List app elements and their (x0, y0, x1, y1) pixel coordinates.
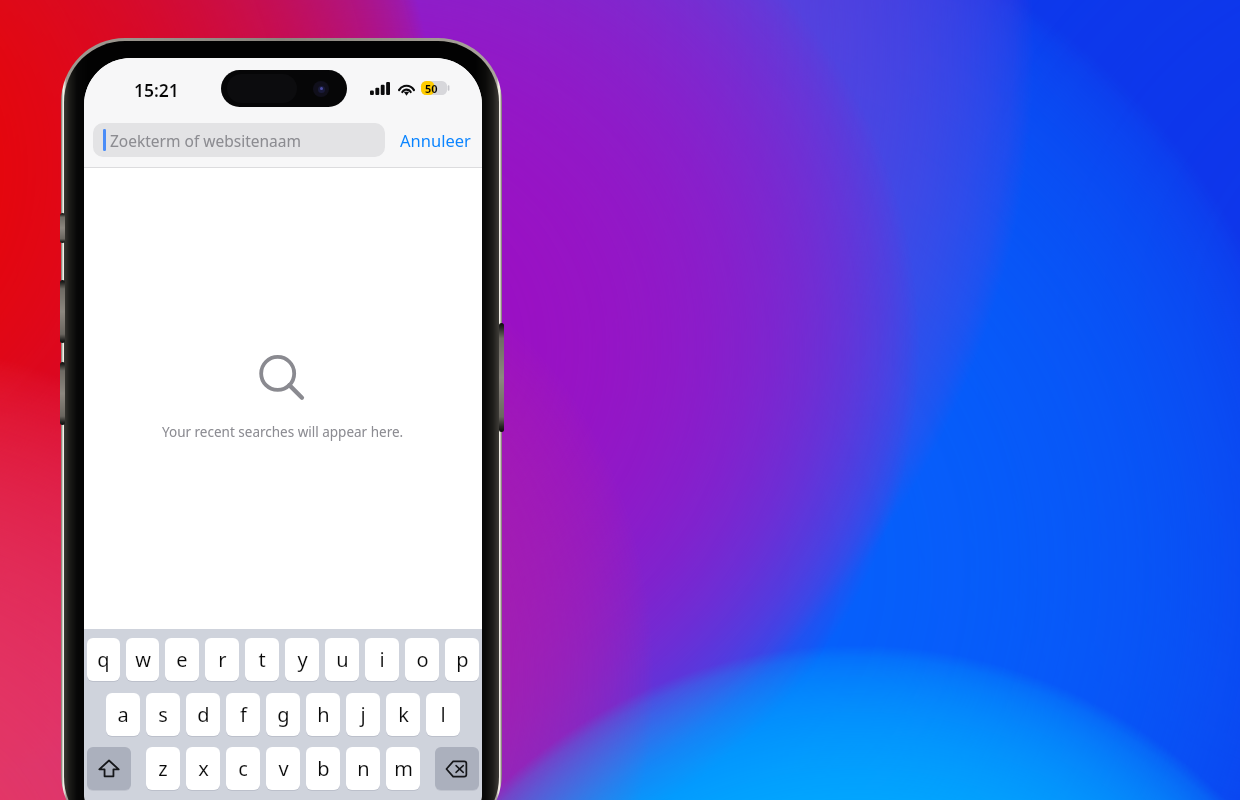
button[interactable]: g (266, 693, 300, 736)
button[interactable]: Annuleer (394, 123, 476, 157)
button[interactable]: u (325, 638, 359, 681)
button[interactable]: n (346, 747, 380, 790)
button[interactable]: l (426, 693, 460, 736)
button[interactable]: c (226, 747, 260, 790)
other: Search (255, 353, 311, 409)
staticText: 15:21 (134, 78, 179, 98)
staticText: j (360, 701, 366, 728)
staticText: k (398, 701, 409, 728)
staticText: f (240, 701, 247, 728)
button[interactable]: q (87, 638, 120, 681)
staticText: Your recent searches will appear here. (162, 423, 404, 441)
button[interactable]: r (205, 638, 239, 681)
button[interactable]: z (146, 747, 180, 790)
button[interactable]: y (285, 638, 319, 681)
button[interactable]: d (186, 693, 220, 736)
staticText: Annuleer (400, 129, 471, 151)
button[interactable]: t (245, 638, 279, 681)
staticText: t (258, 646, 266, 673)
button[interactable]: s (146, 693, 180, 736)
button[interactable]: o (405, 638, 439, 681)
staticText: d (197, 701, 210, 728)
staticText: i (379, 646, 385, 673)
staticText: m (394, 755, 413, 782)
button[interactable]: Shift (87, 747, 131, 790)
staticText: h (317, 701, 330, 728)
staticText: o (416, 646, 429, 673)
button[interactable]: v (266, 747, 300, 790)
button[interactable]: Delete (435, 747, 479, 790)
staticText: s (158, 701, 168, 728)
button[interactable]: a (106, 693, 140, 736)
staticText: a (117, 701, 129, 728)
staticText: q (97, 646, 110, 673)
button[interactable]: i (365, 638, 399, 681)
staticText: r (218, 646, 227, 673)
staticText: p (456, 646, 469, 673)
button[interactable]: j (346, 693, 380, 736)
button[interactable]: f (226, 693, 260, 736)
button[interactable]: x (186, 747, 220, 790)
staticText: l (440, 701, 446, 728)
staticText: w (135, 646, 151, 673)
staticText: z (158, 755, 168, 782)
staticText: 50 (425, 81, 438, 95)
staticText: v (278, 755, 289, 782)
staticText: n (357, 755, 370, 782)
staticText: Zoekterm of websitenaam (110, 130, 301, 151)
staticText: g (277, 701, 290, 728)
button[interactable]: p (445, 638, 479, 681)
button[interactable]: e (165, 638, 199, 681)
button[interactable]: h (306, 693, 340, 736)
button[interactable]: Zoekterm of websitenaam (93, 123, 385, 157)
button[interactable]: w (126, 638, 159, 681)
staticText: u (336, 646, 349, 673)
staticText: b (317, 755, 330, 782)
button[interactable]: k (386, 693, 420, 736)
staticText: x (198, 755, 209, 782)
button[interactable]: b (306, 747, 340, 790)
staticText: y (297, 646, 308, 673)
staticText: e (176, 646, 188, 673)
button[interactable]: m (386, 747, 420, 790)
staticText: c (238, 755, 248, 782)
